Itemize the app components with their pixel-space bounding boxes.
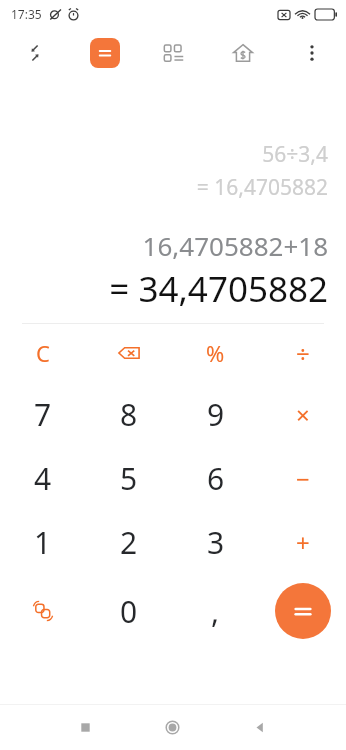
button[interactable]: C — [0, 324, 86, 382]
button[interactable]: 2 — [86, 510, 172, 574]
staticText: , — [211, 591, 220, 632]
staticText: 4 — [34, 458, 52, 499]
button[interactable]: Calculator — [90, 38, 120, 68]
button[interactable]: Recents — [42, 704, 129, 750]
button[interactable]: 6 — [172, 446, 259, 510]
staticText: 17:35 — [11, 6, 42, 22]
button[interactable]: , — [172, 574, 259, 648]
button[interactable]: Home — [129, 704, 216, 750]
staticText: × — [296, 398, 310, 431]
button[interactable]: 3 — [172, 510, 259, 574]
staticText: − — [296, 462, 310, 495]
staticText: 56÷3,4 — [262, 140, 328, 169]
button[interactable]: Backspace — [86, 324, 172, 382]
button[interactable]: % — [172, 324, 259, 382]
button[interactable]: × — [259, 382, 346, 446]
button[interactable]: Back — [216, 704, 303, 750]
staticText: 3 — [207, 522, 225, 563]
button[interactable]: Equals — [275, 583, 331, 639]
button[interactable]: Convert — [0, 574, 86, 648]
button[interactable]: Collapse — [0, 28, 70, 78]
button[interactable]: 8 — [86, 382, 172, 446]
button[interactable]: 0 — [86, 574, 172, 648]
staticText: = 16,4705882 — [196, 173, 328, 202]
button[interactable]: + — [259, 510, 346, 574]
button[interactable]: ÷ — [259, 324, 346, 382]
button[interactable]: Unit converter — [139, 28, 208, 78]
staticText: ÷ — [296, 337, 310, 370]
staticText: % — [206, 338, 225, 368]
staticText: 7 — [34, 394, 52, 435]
button[interactable]: More options — [277, 28, 346, 78]
staticText: 2 — [120, 522, 138, 563]
staticText: 1 — [34, 522, 52, 563]
button[interactable]: 7 — [0, 382, 86, 446]
button[interactable]: 4 — [0, 446, 86, 510]
button[interactable]: − — [259, 446, 346, 510]
staticText: 0 — [120, 591, 138, 632]
button[interactable]: 9 — [172, 382, 259, 446]
staticText: = 34,4705882 — [18, 265, 328, 313]
button[interactable]: 5 — [86, 446, 172, 510]
staticText: + — [296, 526, 310, 559]
staticText: 5 — [120, 458, 138, 499]
staticText: 9 — [207, 394, 225, 435]
button[interactable]: 1 — [0, 510, 86, 574]
button[interactable]: Mortgage — [208, 28, 277, 78]
staticText: C — [36, 338, 50, 368]
staticText: 6 — [207, 458, 225, 499]
staticText: 16,4705882+18 — [142, 228, 328, 263]
staticText: 8 — [120, 394, 138, 435]
